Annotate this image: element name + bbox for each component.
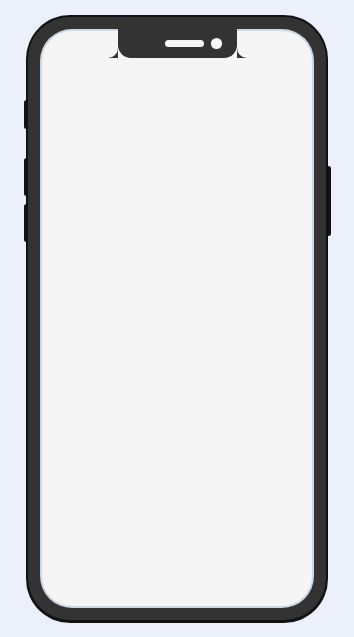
button[interactable]: Phone device preview: [0, 0, 354, 637]
